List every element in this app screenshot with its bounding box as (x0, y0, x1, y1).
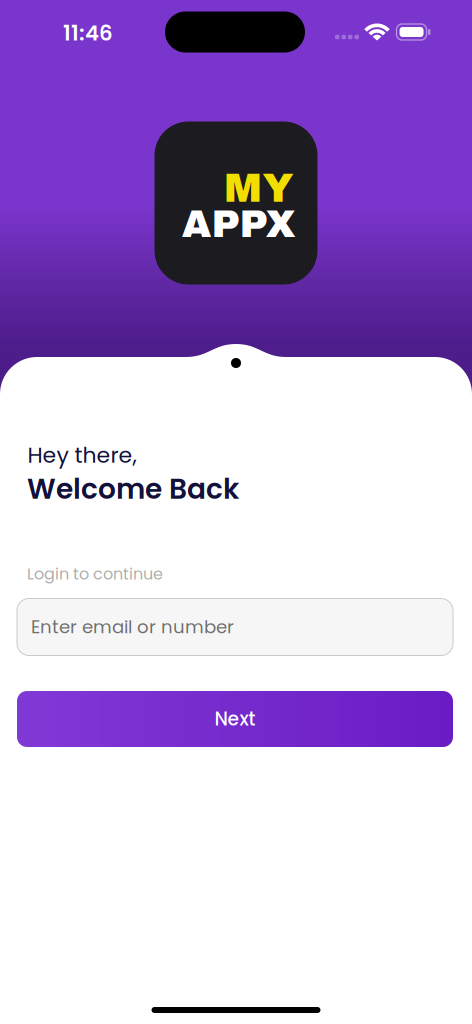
button[interactable]: Next (17, 691, 453, 747)
staticText: Welcome Back (27, 469, 239, 509)
button[interactable]: Enter email or number (17, 598, 453, 655)
staticText: MY (223, 167, 293, 210)
staticText: Enter email or number (31, 614, 234, 640)
staticText: APPX (181, 203, 295, 246)
staticText: Next (214, 706, 255, 732)
staticText: Hey there, (27, 440, 136, 470)
staticText: Login to continue (27, 563, 163, 585)
staticText: 11:46 (63, 18, 113, 48)
